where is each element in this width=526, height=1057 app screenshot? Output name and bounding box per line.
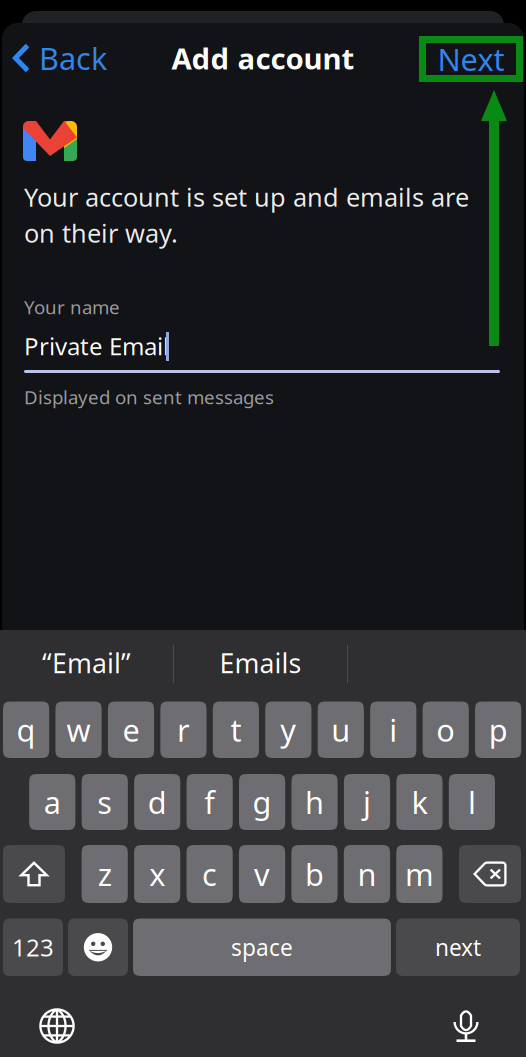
staticText: Displayed on sent messages — [24, 385, 274, 409]
button[interactable]: Delete — [459, 845, 521, 903]
staticText: on their way. — [24, 216, 178, 250]
staticText: m — [405, 854, 434, 894]
button[interactable]: Emoji keyboard — [68, 918, 128, 976]
staticText: w — [67, 709, 91, 750]
staticText: p — [489, 709, 508, 750]
button[interactable]: c — [186, 845, 233, 903]
button[interactable]: m — [396, 845, 442, 903]
staticText: Back — [39, 38, 107, 78]
staticText: k — [411, 782, 427, 822]
button[interactable]: d — [134, 774, 180, 830]
staticText: g — [253, 782, 272, 822]
button[interactable]: k — [396, 774, 443, 830]
button[interactable]: j — [344, 774, 390, 830]
staticText: q — [17, 709, 36, 750]
staticText: l — [468, 782, 476, 822]
button[interactable]: next — [396, 918, 520, 976]
staticText: y — [280, 709, 296, 750]
button[interactable]: f — [187, 774, 233, 830]
button[interactable]: Dictate — [451, 1006, 481, 1044]
button[interactable]: q — [3, 701, 49, 758]
staticText: Add account — [171, 38, 354, 77]
button[interactable]: v — [239, 845, 285, 903]
button[interactable]: g — [239, 774, 285, 830]
staticText: Next — [437, 39, 504, 79]
button[interactable]: Switch keyboard — [39, 1008, 75, 1044]
staticText: a — [44, 782, 61, 822]
staticText: Your account is set up and emails are — [24, 180, 469, 214]
button[interactable]: u — [318, 701, 364, 758]
staticText: f — [204, 782, 215, 822]
staticText: n — [357, 854, 376, 894]
button[interactable]: space — [133, 918, 391, 976]
staticText: “Email” — [42, 645, 131, 681]
button[interactable]: o — [423, 701, 469, 758]
button[interactable]: “Email” — [0, 640, 173, 686]
button[interactable]: x — [134, 845, 180, 903]
staticText: j — [363, 782, 371, 822]
button[interactable]: Shift — [3, 845, 65, 903]
staticText: t — [230, 709, 241, 750]
staticText: o — [436, 709, 455, 750]
button[interactable]: s — [82, 774, 128, 830]
staticText: Private Email — [24, 330, 169, 362]
button[interactable]: z — [82, 845, 128, 903]
button[interactable]: Next — [419, 36, 523, 82]
button[interactable]: y — [265, 701, 311, 758]
staticText: h — [305, 782, 324, 822]
staticText: v — [254, 854, 270, 894]
staticText: z — [98, 854, 112, 894]
button[interactable]: 123 — [3, 918, 63, 976]
staticText: Emails — [219, 645, 301, 681]
staticText: next — [435, 932, 481, 962]
staticText: b — [305, 854, 324, 894]
button[interactable]: r — [160, 701, 207, 758]
button[interactable]: h — [291, 774, 338, 830]
staticText: u — [331, 709, 350, 750]
button[interactable]: a — [29, 774, 75, 830]
button[interactable]: Back — [13, 40, 153, 76]
staticText: i — [389, 709, 397, 750]
button[interactable]: t — [213, 701, 259, 758]
staticText: x — [149, 854, 165, 894]
button[interactable]: n — [344, 845, 390, 903]
button[interactable]: p — [475, 701, 521, 758]
staticText: c — [202, 854, 217, 894]
button[interactable]: l — [449, 774, 495, 830]
button[interactable]: e — [108, 701, 154, 758]
button[interactable]: w — [55, 701, 102, 758]
staticText: e — [122, 709, 139, 750]
staticText: r — [177, 709, 190, 750]
button[interactable]: Emails — [174, 640, 347, 686]
button[interactable]: b — [291, 845, 338, 903]
staticText: 123 — [12, 931, 54, 963]
button[interactable]: i — [370, 701, 416, 758]
staticText: Your name — [24, 295, 120, 319]
staticText: space — [231, 932, 293, 962]
staticText: s — [97, 782, 112, 822]
staticText: d — [148, 782, 167, 822]
